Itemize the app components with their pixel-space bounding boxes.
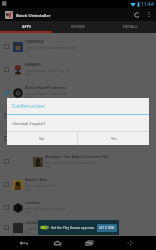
staticText: com.dotsandlines.carbon bbox=[25, 206, 66, 211]
button[interactable]: GET IT NOW bbox=[99, 226, 115, 230]
button[interactable]: Carbon bbox=[0, 196, 156, 219]
staticText: com.gresbytes.activenotif bbox=[25, 91, 66, 96]
staticText: INSTALL bbox=[123, 24, 138, 29]
staticText: com.wardrumstudios.auralux bbox=[25, 137, 72, 142]
button[interactable]: SYSTEM bbox=[52, 21, 104, 33]
staticText: com.eightyeightgames.tenmillion bbox=[25, 45, 79, 50]
staticText: Uninstall 2 app(s)? bbox=[12, 121, 46, 126]
staticText: Batch Uninstaller bbox=[16, 12, 51, 18]
staticText: 0 B bbox=[25, 50, 30, 54]
button[interactable]: Yes bbox=[78, 132, 149, 145]
button[interactable]: Expand bbox=[122, 236, 138, 250]
staticText: No bbox=[39, 136, 45, 141]
staticText: APPS bbox=[22, 24, 31, 29]
staticText: com.analgesicproductions.anodyne bbox=[25, 114, 82, 119]
staticText: ANKBEL bbox=[25, 62, 42, 68]
staticText: 0 B bbox=[25, 119, 30, 123]
button[interactable]: No bbox=[7, 132, 77, 145]
staticText: com.kongregate.cardinalquest bbox=[25, 226, 74, 231]
button[interactable]: Home bbox=[48, 236, 66, 250]
staticText: 0 B bbox=[25, 142, 30, 146]
button[interactable]: Cardinal Quest bbox=[0, 219, 156, 236]
staticText: com.inxile.BardTale bbox=[25, 183, 56, 188]
button[interactable]: More options bbox=[143, 8, 154, 21]
button[interactable]: INSTALL bbox=[104, 21, 156, 33]
button[interactable]: Navigate up bbox=[5, 11, 13, 19]
staticText: 0 B bbox=[25, 231, 30, 235]
staticText: GET IT NOW bbox=[99, 226, 115, 230]
staticText: 0 B bbox=[25, 211, 30, 215]
staticText: Bard's Tale bbox=[25, 177, 48, 183]
staticText: Carbon bbox=[25, 200, 41, 206]
staticText: com.aschbmc.anubel_gp_b3 bbox=[25, 68, 70, 73]
button[interactable]: ActiveNotifications bbox=[0, 81, 156, 104]
button[interactable]: ANKBEL bbox=[0, 58, 156, 81]
button[interactable]: Anodyne bbox=[0, 104, 156, 127]
staticText: 0 B bbox=[25, 73, 30, 77]
button[interactable]: Get the Play Games app now bbox=[38, 220, 119, 235]
staticText: 11:44 bbox=[141, 1, 154, 8]
staticText: 0 B bbox=[45, 165, 50, 169]
staticText: 10000000 bbox=[25, 39, 45, 45]
button[interactable]: Refresh bbox=[131, 8, 143, 21]
button[interactable]: Avadon: The Black Fortress HD bbox=[0, 150, 156, 173]
staticText: Cardinal Quest bbox=[25, 220, 56, 226]
staticText: Get the Play Games app now bbox=[51, 226, 94, 230]
staticText: 0 B bbox=[25, 96, 30, 100]
button[interactable]: Auralux bbox=[0, 127, 156, 150]
button[interactable]: Back bbox=[14, 236, 32, 250]
staticText: Auralux bbox=[25, 131, 42, 137]
staticText: ActiveNotifications bbox=[25, 85, 66, 91]
staticText: 0 B bbox=[25, 188, 30, 192]
staticText: Avadon: The Black Fortress HD bbox=[45, 154, 109, 160]
button[interactable]: Bard's Tale bbox=[0, 173, 156, 196]
button[interactable]: Recent apps bbox=[80, 236, 98, 250]
staticText: SYSTEM bbox=[71, 24, 85, 29]
staticText: Confirm action bbox=[12, 103, 45, 109]
button[interactable]: APPS bbox=[0, 21, 52, 33]
staticText: com.spiderweb.avadon.humble bbox=[45, 160, 96, 165]
staticText: Yes bbox=[111, 136, 117, 141]
button[interactable]: 10000000 bbox=[0, 35, 156, 58]
